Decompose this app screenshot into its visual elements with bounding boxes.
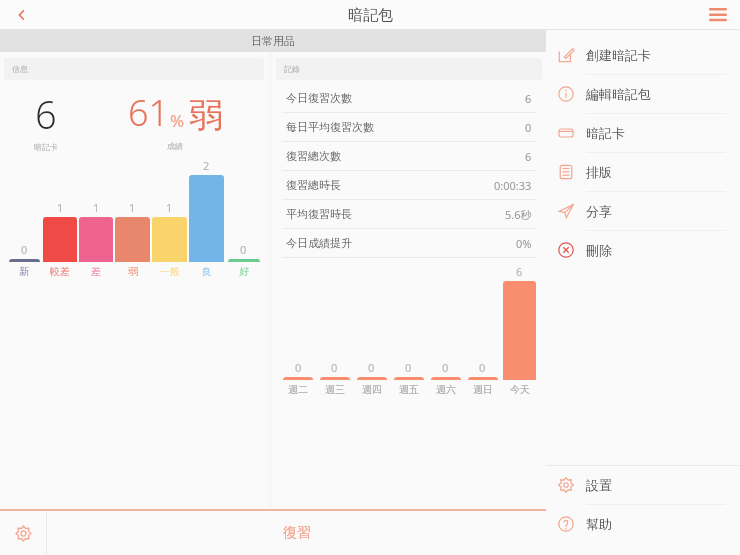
staticText: 0 [442,360,449,375]
button[interactable]: Menu [696,0,740,30]
staticText: 平均復習時長 [286,207,352,221]
staticText: 週五 [399,383,419,396]
staticText: 幫助 [586,516,612,532]
button[interactable]: 復習總時長 [272,171,546,200]
staticText: 復習 [283,524,311,542]
button[interactable]: 設置 [546,466,740,504]
staticText: 6 [35,88,57,140]
button[interactable]: 暗記卡 [546,114,740,152]
staticText: 6 [525,91,532,106]
staticText: 設置 [586,477,612,493]
staticText: 好 [239,265,249,278]
button[interactable]: 創建暗記卡 [546,36,740,74]
staticText: 週六 [436,383,456,396]
staticText: 一般 [160,265,180,278]
staticText: 編輯暗記包 [586,86,651,102]
staticText: 每日平均復習次數 [286,120,374,134]
button[interactable]: 刪除 [546,231,740,269]
staticText: 0 [525,120,532,135]
staticText: 新 [19,265,29,278]
staticText: 暗記卡 [34,142,58,152]
staticText: 2 [203,158,210,173]
button[interactable]: 復習 [47,511,546,555]
button[interactable]: Back [0,0,44,30]
staticText: 復習總次數 [286,149,341,163]
staticText: 差 [91,265,101,278]
staticText: 刪除 [586,242,612,258]
staticText: 暗記卡 [586,125,625,141]
staticText: 0 [331,360,338,375]
staticText: 週三 [325,383,345,396]
staticText: 復習總時長 [286,178,341,192]
staticText: 1 [57,200,64,215]
staticText: 分享 [586,203,612,219]
staticText: 弱 [189,94,223,137]
staticText: 0 [368,360,375,375]
staticText: 信息 [12,64,28,74]
staticText: 暗記包 [348,6,393,25]
button[interactable]: 今日成績提升 [272,229,546,258]
staticText: 1 [166,200,173,215]
staticText: 今天 [510,383,530,396]
staticText: 今日復習次數 [286,91,352,105]
staticText: 今日成績提升 [286,236,352,250]
staticText: 弱 [128,265,138,278]
staticText: 創建暗記卡 [586,47,651,63]
button[interactable]: 排版 [546,153,740,191]
button[interactable]: Settings [0,511,46,555]
staticText: 週日 [473,383,493,396]
button[interactable]: 今日復習次數 [272,84,546,113]
staticText: 1 [129,200,136,215]
staticText: 0 [21,242,28,257]
staticText: 0:00:33 [494,178,532,193]
staticText: 0 [295,360,302,375]
staticText: 61 [128,88,170,137]
staticText: 成績 [167,141,183,151]
button[interactable]: 每日平均復習次數 [272,113,546,142]
staticText: 5.6秒 [505,207,532,222]
staticText: 0 [479,360,486,375]
staticText: 6 [516,264,523,279]
staticText: 1 [93,200,100,215]
staticText: 0 [240,242,247,257]
button[interactable]: 幫助 [546,505,740,543]
staticText: % [170,109,185,132]
staticText: 0% [516,236,532,251]
staticText: 良 [202,265,212,278]
staticText: 0 [405,360,412,375]
staticText: 6 [525,149,532,164]
staticText: 週二 [288,383,308,396]
staticText: 較差 [50,265,70,278]
button[interactable]: 編輯暗記包 [546,75,740,113]
button[interactable]: 分享 [546,192,740,230]
staticText: 排版 [586,164,612,180]
staticText: 記錄 [284,64,300,74]
staticText: 日常用品 [251,34,295,48]
button[interactable]: 平均復習時長 [272,200,546,229]
staticText: 週四 [362,383,382,396]
button[interactable]: 復習總次數 [272,142,546,171]
